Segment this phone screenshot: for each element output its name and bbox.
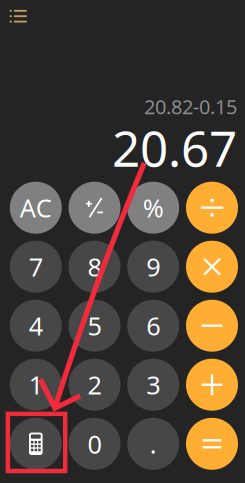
staticText: 3 — [146, 368, 160, 401]
button[interactable]: 7 — [10, 241, 62, 293]
staticText: 6 — [146, 309, 160, 342]
staticText: 7 — [29, 250, 43, 283]
staticText: % — [143, 191, 164, 224]
staticText: 1 — [29, 368, 43, 401]
button[interactable]: % — [127, 182, 179, 234]
staticText: 20.67 — [112, 115, 237, 180]
button[interactable]: 4 — [10, 300, 62, 352]
button[interactable]: . — [127, 418, 179, 470]
button[interactable]: Plus minus — [68, 182, 120, 234]
button[interactable]: Equals — [186, 418, 238, 470]
staticText: . — [150, 427, 157, 461]
staticText: 8 — [87, 250, 101, 283]
button[interactable]: 3 — [127, 359, 179, 411]
button[interactable]: 9 — [127, 241, 179, 293]
staticText: 5 — [87, 309, 101, 342]
button[interactable]: Plus — [186, 359, 238, 411]
button[interactable]: Multiply — [186, 241, 238, 293]
button[interactable]: 2 — [68, 359, 120, 411]
button[interactable]: 5 — [68, 300, 120, 352]
button[interactable]: 0 — [68, 418, 120, 470]
button[interactable]: 6 — [127, 300, 179, 352]
button[interactable]: History — [1, 0, 35, 33]
staticText: 9 — [146, 250, 160, 283]
button[interactable]: AC — [10, 182, 62, 234]
button[interactable]: Minus — [186, 300, 238, 352]
button[interactable]: Calculator — [10, 418, 62, 470]
button[interactable]: 8 — [68, 241, 120, 293]
button[interactable]: 1 — [10, 359, 62, 411]
staticText: 20.82-0.15 — [144, 93, 237, 120]
button[interactable]: Divide — [186, 182, 238, 234]
staticText: 0 — [87, 427, 101, 461]
staticText: 4 — [29, 309, 43, 342]
staticText: AC — [20, 191, 52, 224]
staticText: 2 — [87, 368, 101, 401]
